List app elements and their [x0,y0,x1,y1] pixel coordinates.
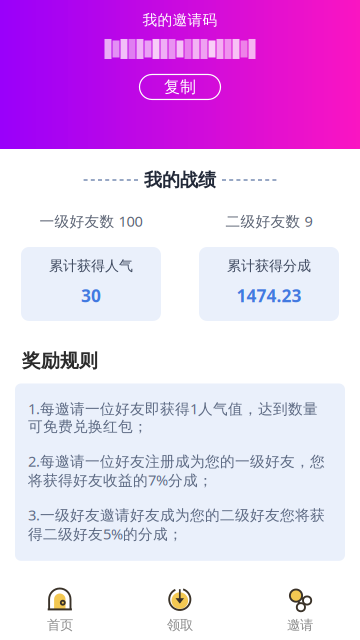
staticText: 我的邀请码 [142,11,217,29]
staticText: 我的战绩 [144,169,216,191]
staticText: 一级好友数 100 [39,211,142,231]
staticText: 累计获得分成 [227,257,311,275]
staticText: 首页 [47,617,73,633]
staticText: 1.每邀请一位好友即获得1人气值，达到数量可免费兑换红包； [28,398,318,436]
button[interactable]: 邀请 [240,575,360,640]
staticText: 领取 [167,617,193,633]
staticText: 邀请 [287,617,313,633]
staticText: 2.每邀请一位好友注册成为您的一级好友，您将获得好友收益的7%分成； [28,451,325,490]
staticText: 奖励规则 [22,349,98,372]
button[interactable]: 首页 [0,575,120,640]
staticText: 3.一级好友邀请好友成为您的二级好友您将获得二级好友5%的分成； [28,505,325,544]
staticText: 30 [81,284,101,307]
staticText: 累计获得人气 [49,257,133,275]
button[interactable]: 复制 [139,74,220,99]
staticText: 二级好友数 9 [225,211,312,231]
button[interactable]: 领取 [120,575,240,640]
staticText: 1474.23 [236,284,301,307]
staticText: 复制 [164,77,196,97]
